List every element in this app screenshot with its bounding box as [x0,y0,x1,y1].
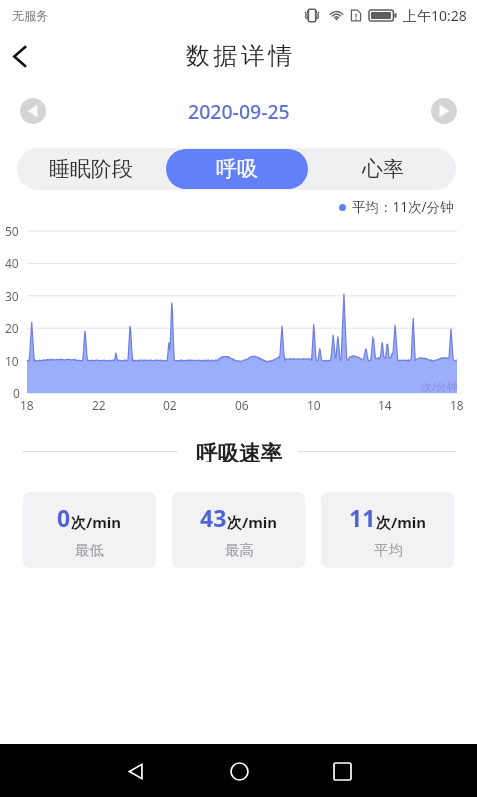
staticText: 10 [5,353,19,369]
staticText: 06 [235,397,249,413]
button[interactable]: 呼吸 [166,149,308,189]
staticText: 14 [378,397,392,413]
staticText: 呼吸 [216,156,258,182]
staticText: 呼吸速率 [196,440,282,462]
staticText: 11 [349,502,376,533]
staticText: 50 [5,223,19,239]
staticText: 02 [163,397,177,413]
button[interactable]: Back [112,747,160,795]
staticText: 数据详情 [184,41,294,71]
staticText: 0 [13,385,20,401]
staticText: 18 [450,397,464,413]
staticText: 43 [200,502,227,533]
button[interactable]: Recent apps [318,747,366,795]
staticText: 40 [5,255,19,271]
staticText: 心率 [362,156,404,182]
staticText: 次/分钟 [421,379,459,394]
staticText: 30 [5,288,19,304]
button[interactable]: 43 [172,492,305,568]
button[interactable]: 11 [321,492,454,568]
staticText: 次/min [376,512,427,532]
staticText: 0 [57,502,71,533]
staticText: 无服务 [12,8,48,23]
button[interactable]: Back [0,30,40,82]
staticText: 上午10:28 [403,6,467,25]
button[interactable]: 心率 [310,148,456,190]
button[interactable]: 睡眠阶段 [17,148,164,190]
button[interactable]: 0 [23,492,156,568]
staticText: 10 [307,397,321,413]
staticText: 18 [20,397,34,413]
staticText: 20 [5,320,19,336]
staticText: 22 [92,397,106,413]
staticText: 平均：11次/分钟 [352,198,454,216]
staticText: 最高 [225,541,254,559]
staticText: 次/min [71,512,122,532]
staticText: 最低 [75,541,104,559]
staticText: 2020-09-25 [188,98,290,125]
staticText: 平均 [374,541,403,559]
staticText: 睡眠阶段 [49,156,133,182]
staticText: 次/min [227,512,278,532]
button[interactable]: Previous day [20,98,46,124]
button[interactable]: Home [215,747,263,795]
button[interactable]: Next day [431,98,457,124]
